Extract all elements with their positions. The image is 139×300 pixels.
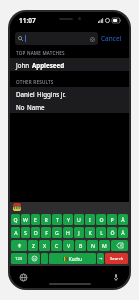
button[interactable]: Backspace [111,240,128,251]
button[interactable]: Key [41,253,48,264]
staticText: TOP NAME MATCHES [16,50,65,56]
staticText: Ö [110,229,115,236]
button[interactable]: B [75,240,86,251]
staticText: J [78,229,80,236]
staticText: F [45,229,48,236]
staticText: 123 [15,256,23,262]
button[interactable]: Cancel [98,32,125,45]
staticText: B [79,242,83,249]
button[interactable]: L [96,227,106,238]
staticText: W [23,216,28,223]
button[interactable]: 123 [11,253,27,264]
button[interactable]: No [10,100,129,113]
button[interactable]: V [63,240,74,251]
staticText: P [110,216,114,223]
button[interactable]: Suggestion [13,203,21,211]
button[interactable]: U [74,214,84,225]
button[interactable]: S [21,227,30,238]
button[interactable]: X [39,240,50,251]
staticText: S [24,229,27,236]
staticText: Name [27,103,45,111]
button[interactable]: Change keyboard language [19,273,28,282]
button[interactable]: Search [105,253,128,264]
staticText: T [56,216,59,223]
staticText: John [16,61,30,69]
button[interactable]: M [99,240,110,251]
staticText: Cancel [101,34,122,43]
button[interactable]: Z [28,240,38,251]
button[interactable]: W [21,214,30,225]
staticText: Higgins Jr. [37,90,66,98]
button[interactable]: Kuchu [49,253,96,264]
staticText: H [66,229,70,236]
button[interactable]: Clear text [89,36,95,42]
button[interactable]: C [51,240,62,251]
button[interactable]: Q [11,214,20,225]
staticText: → [99,256,103,261]
staticText: N [91,242,95,249]
staticText: D [34,229,38,236]
staticText: Y [67,216,70,223]
button[interactable]: O [96,214,106,225]
button[interactable]: H [63,227,73,238]
button[interactable]: N [87,240,98,251]
staticText: Q [13,216,18,223]
button[interactable]: Ö [107,227,117,238]
staticText: Å [121,216,125,223]
staticText: Z [32,242,35,249]
button[interactable]: Dictate [111,273,120,282]
staticText: O [99,216,104,223]
staticText: 11:07 [19,16,36,25]
button[interactable]: Å [118,214,128,225]
button[interactable]: Daniel [10,87,129,100]
staticText: No [16,103,25,111]
staticText: A [14,229,18,236]
button[interactable]: R [41,214,51,225]
staticText: M [102,242,107,249]
staticText: U [77,216,81,223]
button[interactable]: Emoji [28,253,40,264]
staticText: Search [110,256,124,262]
staticText: V [67,242,71,249]
button[interactable]: J [74,227,84,238]
staticText: C [55,242,59,249]
staticText: Appleseed [32,61,65,69]
staticText: G [55,229,59,236]
button[interactable]: K [85,227,95,238]
staticText: Ä [121,229,125,236]
button[interactable]: Shift [11,240,27,251]
button[interactable]: P [107,214,117,225]
button[interactable]: G [52,227,62,238]
staticText: L [100,229,103,236]
button[interactable]: Y [63,214,73,225]
button[interactable]: I [85,214,95,225]
staticText: Daniel [16,90,35,98]
staticText: Kuchu [69,256,82,262]
button[interactable]: F [41,227,51,238]
button[interactable]: Clear text [15,32,98,45]
button[interactable]: John [10,58,129,71]
staticText: E [34,216,37,223]
staticText: OTHER RESULTS [16,79,54,85]
button[interactable]: Key [97,253,104,264]
button[interactable]: D [31,227,40,238]
button[interactable]: Ä [118,227,128,238]
button[interactable]: E [31,214,40,225]
staticText: I [89,216,91,223]
staticText: X [43,242,47,249]
staticText: K [88,229,92,236]
staticText: R [44,216,48,223]
button[interactable]: A [11,227,20,238]
button[interactable]: T [52,214,62,225]
